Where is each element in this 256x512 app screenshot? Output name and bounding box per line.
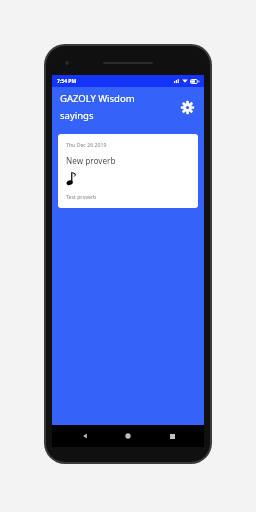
staticText: Thu Dec 26 2019 [66, 141, 107, 148]
staticText: New proverb [66, 155, 116, 166]
staticText: 7:54 PM [57, 78, 77, 85]
button[interactable]: Thu Dec 26 2019 [58, 134, 198, 208]
staticText: Test proverb [66, 193, 97, 200]
button[interactable]: Recent apps [161, 425, 183, 447]
button[interactable]: Home [117, 425, 139, 447]
button[interactable]: Back [74, 425, 96, 447]
button[interactable]: Settings [175, 95, 199, 119]
staticText: sayings [60, 109, 94, 122]
staticText: GAZOLY Wisdom [60, 92, 135, 105]
